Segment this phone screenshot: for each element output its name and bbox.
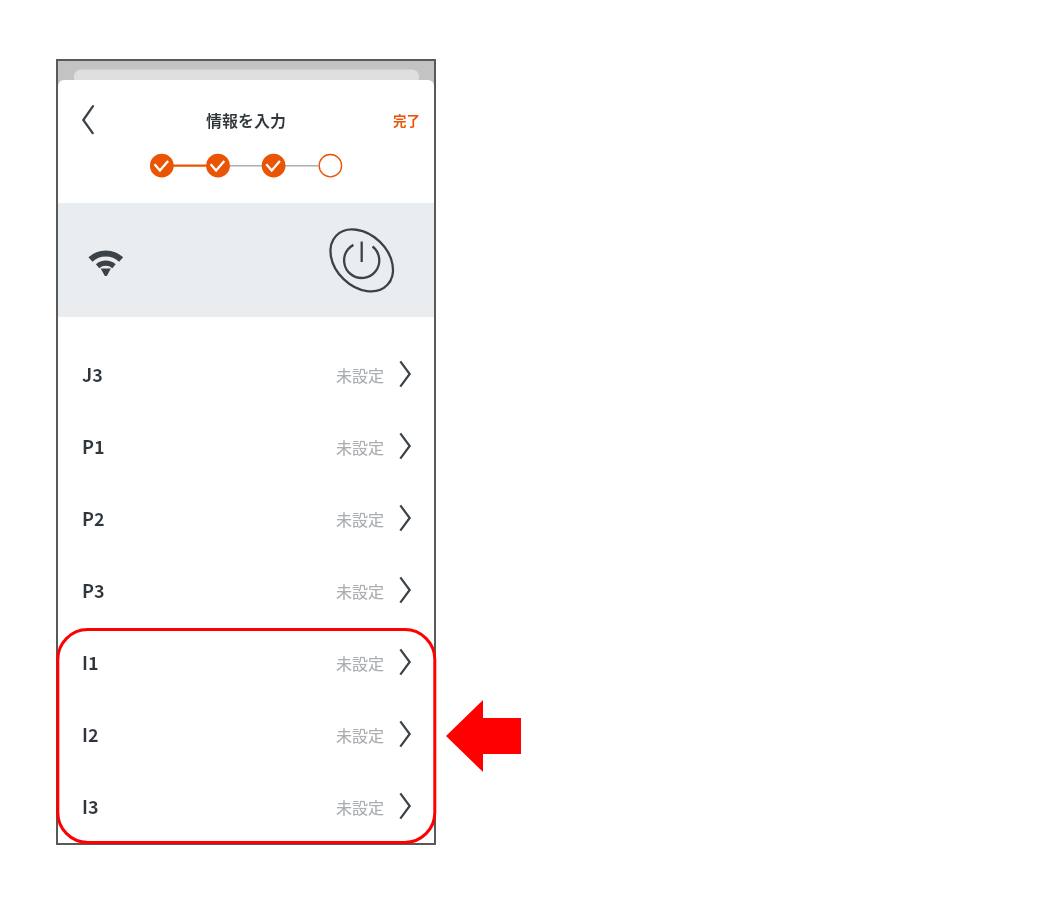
staticText: I3 xyxy=(82,793,99,819)
staticText: 未設定 xyxy=(336,507,385,530)
staticText: 完了 xyxy=(393,110,420,130)
button[interactable]: P3 xyxy=(58,554,434,626)
other: Wi-Fi xyxy=(86,248,126,282)
button[interactable]: P1 xyxy=(58,410,434,482)
button[interactable]: P2 xyxy=(58,482,434,554)
button[interactable]: I3 xyxy=(58,770,434,842)
staticText: P2 xyxy=(82,505,105,531)
staticText: 未設定 xyxy=(336,435,385,458)
staticText: 未設定 xyxy=(336,579,385,602)
button[interactable]: J3 xyxy=(58,338,434,410)
staticText: 未設定 xyxy=(336,363,385,386)
staticText: 未設定 xyxy=(336,723,385,746)
staticText: P1 xyxy=(82,433,105,459)
staticText: 情報を入力 xyxy=(206,108,287,131)
staticText: 未設定 xyxy=(336,651,385,674)
button[interactable]: 完了 xyxy=(376,104,434,136)
staticText: I2 xyxy=(82,721,99,747)
staticText: P3 xyxy=(82,577,105,603)
button[interactable]: Back xyxy=(66,94,110,146)
button[interactable]: I2 xyxy=(58,698,434,770)
button[interactable]: I1 xyxy=(58,626,434,698)
staticText: 未設定 xyxy=(336,795,385,818)
button[interactable]: Power xyxy=(328,227,396,295)
staticText: J3 xyxy=(82,361,103,387)
staticText: I1 xyxy=(82,649,99,675)
